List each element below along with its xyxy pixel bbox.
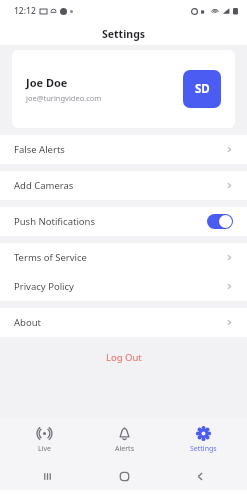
staticText: Alerts <box>115 444 134 454</box>
staticText: Joe Doe <box>26 75 68 90</box>
staticText: SD <box>195 81 210 97</box>
staticText: False Alerts <box>14 143 65 156</box>
button[interactable]: Log Out <box>0 346 247 368</box>
button[interactable]: Alerts <box>89 422 159 458</box>
staticText: Privacy Policy <box>14 280 74 293</box>
button[interactable]: Terms of Service <box>0 243 247 272</box>
button[interactable]: False Alerts <box>0 135 247 164</box>
staticText: Terms of Service <box>14 251 87 264</box>
button[interactable]: Add Cameras <box>0 171 247 200</box>
staticText: 12:12 <box>14 5 36 17</box>
staticText: Log Out <box>106 351 142 364</box>
button[interactable]: Recents <box>17 462 77 490</box>
button[interactable]: About <box>0 308 247 337</box>
button[interactable]: Home <box>94 462 154 490</box>
staticText: Add Cameras <box>14 179 74 192</box>
staticText: Settings <box>190 444 217 454</box>
staticText: Push Notifications <box>14 215 96 228</box>
button[interactable]: Live <box>9 422 79 458</box>
button[interactable]: Joe Doe <box>12 50 235 128</box>
button[interactable]: Back <box>170 462 230 490</box>
button[interactable]: Settings <box>168 422 238 458</box>
button[interactable]: Privacy Policy <box>0 272 247 301</box>
staticText: About <box>14 316 41 329</box>
staticText: Settings <box>102 27 146 41</box>
staticText: joe@turingvideo.com <box>26 93 102 103</box>
staticText: Live <box>38 444 51 454</box>
button[interactable]: Push Notifications <box>0 207 247 236</box>
